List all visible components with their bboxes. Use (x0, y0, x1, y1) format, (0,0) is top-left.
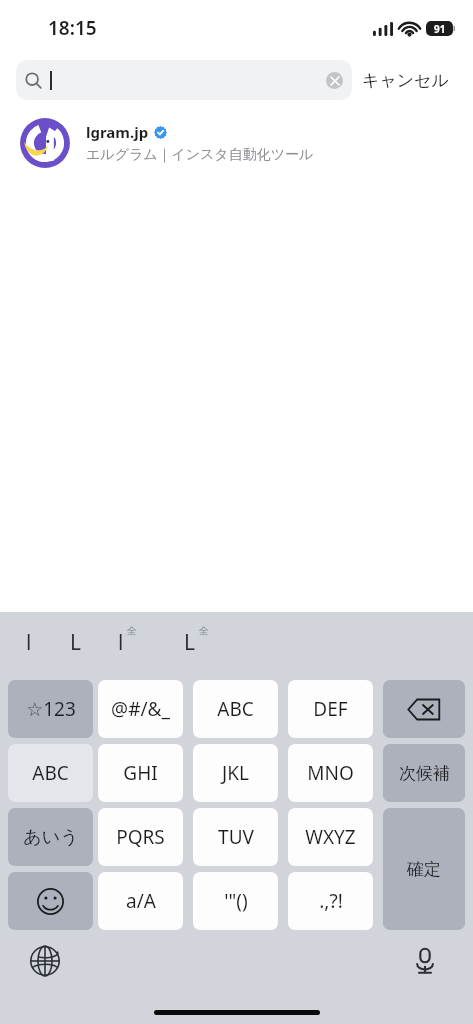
staticText: l (26, 628, 32, 657)
button[interactable]: Switch keyboard (26, 942, 64, 980)
button[interactable]: TUV (193, 808, 278, 866)
button[interactable]: '"() (193, 872, 278, 930)
staticText: 全 (199, 624, 209, 637)
staticText: L (184, 628, 196, 657)
button[interactable]: DEF (288, 680, 373, 738)
button[interactable]: a/A (98, 872, 183, 930)
staticText: 91 (434, 22, 446, 36)
button[interactable]: l (114, 624, 141, 661)
button[interactable]: 確定 (383, 808, 465, 930)
button[interactable]: ABC (8, 744, 93, 802)
button[interactable]: WXYZ (288, 808, 373, 866)
button[interactable]: GHI (98, 744, 183, 802)
staticText: GHI (123, 760, 158, 786)
staticText: ABC (217, 696, 254, 722)
staticText: 全 (127, 624, 137, 637)
staticText: lgram.jp (86, 122, 149, 142)
button[interactable]: L (66, 624, 86, 661)
button[interactable]: ABC (193, 680, 278, 738)
button[interactable]: PQRS (98, 808, 183, 866)
staticText: @#/&_ (111, 696, 170, 722)
staticText: 確定 (407, 859, 441, 880)
button[interactable]: JKL (193, 744, 278, 802)
staticText: PQRS (116, 824, 165, 850)
staticText: キャンセル (362, 70, 449, 91)
staticText: 次候補 (399, 763, 450, 784)
button[interactable]: .,?! (288, 872, 373, 930)
button[interactable]: キャンセル (352, 62, 459, 99)
button[interactable]: ☆123 (8, 680, 93, 738)
staticText: ABC (32, 760, 69, 786)
staticText: WXYZ (305, 824, 356, 850)
button[interactable]: あいう (8, 808, 93, 866)
staticText: '"() (224, 888, 248, 914)
staticText: TUV (218, 824, 254, 850)
button[interactable]: l (22, 624, 36, 661)
button[interactable]: L (180, 624, 213, 661)
button[interactable]: Emoji (8, 872, 93, 930)
button[interactable]: 次候補 (383, 744, 465, 802)
button[interactable]: Clear text (16, 60, 352, 100)
button[interactable]: lgram.jp (0, 108, 473, 178)
staticText: L (70, 628, 82, 657)
staticText: DEF (313, 696, 348, 722)
button[interactable]: Clear text (326, 72, 343, 89)
button[interactable]: Delete (383, 680, 465, 738)
staticText: JKL (222, 760, 249, 786)
button[interactable]: Dictation (406, 942, 444, 980)
button[interactable]: @#/&_ (98, 680, 183, 738)
staticText: MNO (307, 760, 354, 786)
staticText: a/A (126, 888, 156, 914)
button[interactable]: MNO (288, 744, 373, 802)
staticText: エルグラム｜インスタ自動化ツール (86, 146, 314, 164)
staticText: あいう (23, 826, 79, 849)
staticText: .,?! (319, 888, 343, 914)
staticText: ☆123 (26, 696, 76, 722)
staticText: l (118, 628, 124, 657)
staticText: 18:15 (48, 15, 97, 41)
